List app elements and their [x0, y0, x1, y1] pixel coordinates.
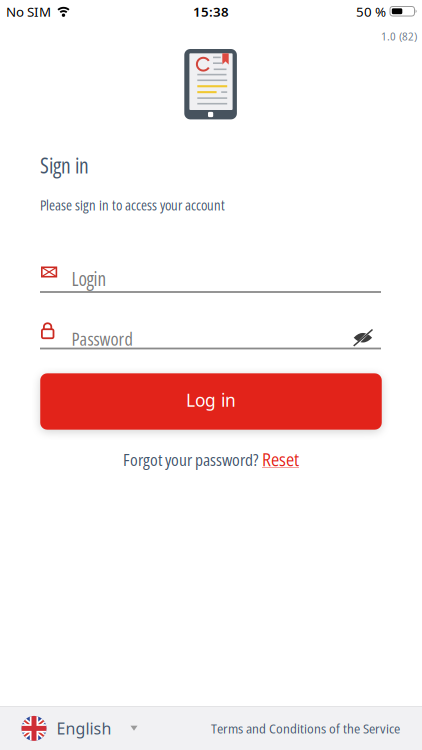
button[interactable]: Show password	[352, 331, 373, 345]
staticText: Password	[71, 326, 132, 351]
staticText: Reset	[262, 448, 299, 471]
staticText: 50 %	[356, 3, 386, 20]
staticText: 15:38	[193, 3, 229, 20]
staticText: English	[56, 718, 111, 739]
staticText: No SIM	[6, 3, 51, 20]
button[interactable]: Log in	[40, 373, 382, 430]
staticText: Log in	[186, 388, 236, 411]
button[interactable]: Language: English	[21, 716, 137, 741]
staticText: Sign in	[40, 150, 89, 180]
staticText: Login	[71, 265, 106, 292]
staticText: 1.0 (82)	[381, 28, 417, 44]
staticText: Please sign in to access your account	[40, 196, 225, 214]
button[interactable]: Password	[0, 290, 422, 352]
staticText: Forgot your password?	[123, 448, 258, 471]
button[interactable]: Login	[0, 238, 422, 294]
button[interactable]: Reset	[262, 448, 299, 471]
button[interactable]: Terms and Conditions of the Service	[211, 719, 400, 737]
staticText: Terms and Conditions of the Service	[211, 719, 400, 737]
